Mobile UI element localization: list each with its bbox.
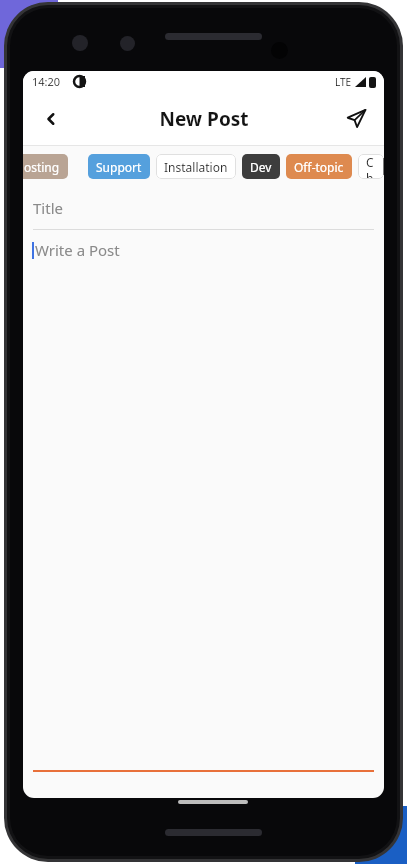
staticText: 14:20: [32, 74, 61, 89]
button[interactable]: Off-topic: [286, 154, 352, 179]
staticText: Write a Post: [35, 240, 120, 260]
button[interactable]: Chit Chat: [358, 154, 384, 179]
staticText: New Post: [159, 106, 249, 132]
button[interactable]: Hosting: [23, 154, 68, 179]
button[interactable]: Title: [23, 186, 384, 229]
staticText: LTE: [335, 75, 352, 89]
button[interactable]: Write a Post: [23, 230, 384, 270]
staticText: Chit Chat: [366, 154, 376, 179]
button[interactable]: Support: [88, 154, 150, 179]
staticText: Installation: [164, 159, 228, 175]
staticText: Dev: [250, 159, 272, 175]
staticText: Off-topic: [294, 159, 344, 175]
staticText: Hosting: [23, 159, 60, 175]
button[interactable]: Dev: [242, 154, 280, 179]
button[interactable]: Send: [340, 102, 373, 135]
button[interactable]: Back: [34, 102, 67, 135]
button[interactable]: Installation: [156, 154, 236, 179]
staticText: Title: [33, 198, 63, 218]
staticText: Support: [96, 159, 142, 175]
